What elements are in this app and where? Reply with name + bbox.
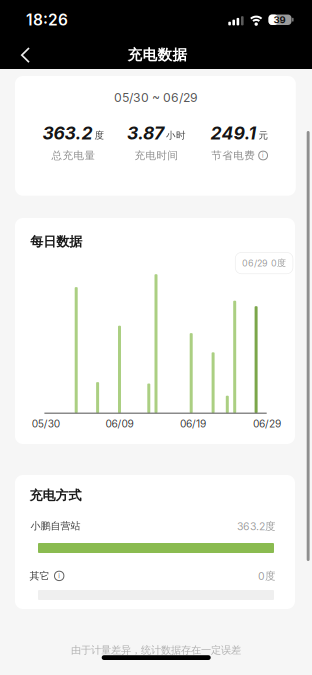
button[interactable] bbox=[0, 0, 44, 44]
staticText: i bbox=[58, 572, 60, 580]
staticText: i bbox=[262, 152, 264, 159]
staticText: 0度 bbox=[258, 569, 276, 583]
staticText: 06/09 bbox=[105, 418, 133, 430]
staticText: 06/29 bbox=[253, 418, 281, 430]
staticText: 度 bbox=[94, 129, 104, 141]
staticText: 小鹏自营站 bbox=[31, 520, 81, 532]
staticText: 元 bbox=[259, 129, 269, 141]
staticText: 充电数据 bbox=[127, 46, 187, 64]
staticText: 363.2度 bbox=[237, 520, 276, 533]
button[interactable]: 其它 bbox=[30, 570, 230, 582]
staticText: 节省电费 bbox=[211, 149, 255, 162]
staticText: 363.2 bbox=[42, 123, 92, 144]
staticText: 每日数据 bbox=[30, 233, 82, 250]
staticText: 充电方式 bbox=[30, 487, 82, 504]
staticText: 249.1 bbox=[211, 123, 257, 144]
staticText: 充电时间 bbox=[134, 149, 178, 162]
staticText: 3.87 bbox=[127, 123, 164, 144]
button[interactable]: 节省电费 bbox=[211, 149, 268, 162]
staticText: 06/29 0度 bbox=[242, 257, 286, 269]
staticText: 小时 bbox=[166, 129, 186, 141]
staticText: 39 bbox=[273, 14, 285, 25]
staticText: 05/30 ~ 06/29 bbox=[114, 90, 198, 105]
staticText: 由于计量差异，统计数据存在一定误差 bbox=[71, 644, 241, 656]
staticText: 06/19 bbox=[180, 418, 206, 430]
staticText: 05/30 bbox=[32, 418, 60, 430]
staticText: 总充电量 bbox=[51, 149, 95, 162]
staticText: 其它 bbox=[30, 570, 50, 582]
staticText: 18:26 bbox=[26, 10, 68, 29]
